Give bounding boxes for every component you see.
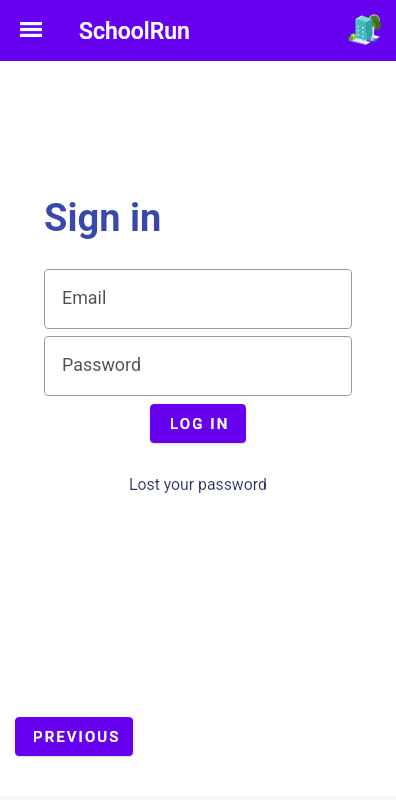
button[interactable]: Open navigation menu (8, 6, 54, 52)
button[interactable]: Lost your password (121, 471, 275, 498)
button[interactable]: School (349, 14, 380, 45)
staticText: Lost your password (129, 475, 267, 494)
staticText: Password (62, 354, 142, 375)
staticText: SchoolRun (79, 18, 190, 45)
staticText: Email (62, 287, 107, 308)
staticText: LOG IN (170, 415, 230, 433)
button[interactable]: Email (44, 269, 352, 329)
staticText: Sign in (44, 196, 162, 241)
button[interactable]: LOG IN (150, 404, 246, 443)
button[interactable]: PREVIOUS (15, 717, 133, 756)
button[interactable]: Password (44, 336, 352, 396)
staticText: PREVIOUS (33, 728, 121, 746)
